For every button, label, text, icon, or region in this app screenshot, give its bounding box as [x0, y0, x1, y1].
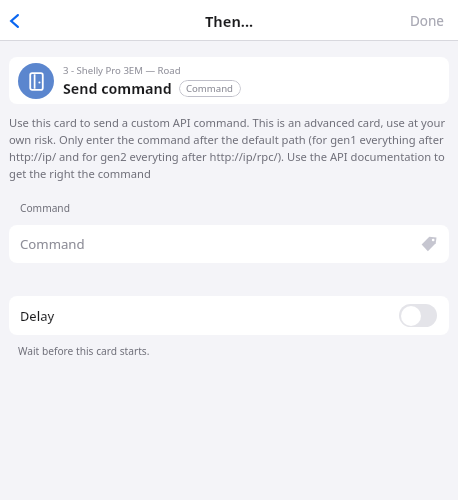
staticText: Wait before this card starts. [18, 344, 150, 358]
button[interactable]: Delay [9, 296, 449, 335]
staticText: Command [20, 201, 70, 215]
staticText: Delay [20, 307, 399, 324]
button[interactable]: Done [396, 0, 458, 41]
staticText: Command [186, 82, 234, 95]
button[interactable]: Delay toggle [399, 304, 437, 327]
button[interactable]: Command [9, 225, 449, 263]
staticText: 3 - Shelly Pro 3EM — Road [63, 64, 181, 77]
staticText: Send command [63, 79, 172, 98]
staticText: Done [410, 12, 444, 30]
staticText: Then... [205, 11, 254, 31]
staticText: Use this card to send a custom API comma… [9, 115, 449, 181]
button[interactable]: Back [0, 0, 40, 41]
button[interactable]: 3 - Shelly Pro 3EM — Road [9, 57, 449, 104]
staticText: Command [20, 235, 421, 253]
